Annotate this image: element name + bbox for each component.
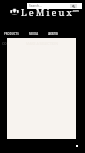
staticText: LeMieux [21, 6, 74, 17]
staticText: CO [2, 41, 7, 46]
button[interactable]: Search... [27, 3, 82, 9]
staticText: MEDIA [29, 32, 39, 36]
button[interactable]: LeMieux home [10, 6, 80, 17]
staticText: PRODUCTS [4, 32, 19, 36]
staticText: .com [72, 9, 79, 13]
staticText: ABOUT US [48, 32, 58, 36]
button[interactable]: Search [70, 4, 77, 8]
button[interactable]: ABOUT US [48, 32, 58, 36]
staticText: Search... [29, 4, 42, 8]
button[interactable]: PRODUCTS [4, 32, 19, 36]
button[interactable]: MEDIA [29, 32, 39, 36]
